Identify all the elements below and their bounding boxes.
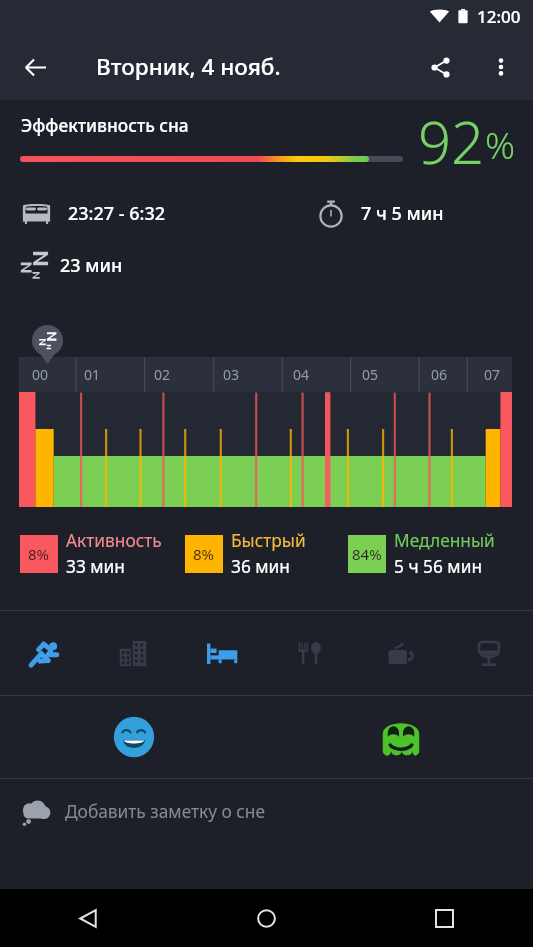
staticText: 7 ч 5 мин [361, 201, 444, 226]
button[interactable]: Mood: happy [110, 713, 158, 761]
staticText: 05 [362, 365, 379, 384]
staticText: 36 мин [231, 555, 290, 579]
button[interactable]: Mood: ghost [377, 713, 425, 761]
staticText: 92 [418, 102, 485, 172]
staticText: 02 [154, 365, 171, 384]
button[interactable]: 84% [348, 529, 495, 579]
staticText: 00 [32, 365, 49, 384]
button[interactable]: Back [11, 43, 59, 91]
button[interactable]: Back [0, 889, 177, 947]
button[interactable]: Recents [355, 889, 533, 947]
staticText: 04 [293, 365, 310, 384]
button[interactable]: 8% [20, 529, 162, 579]
staticText: Эффективность сна [21, 114, 189, 138]
staticText: 84% [352, 544, 382, 564]
staticText: 01 [84, 365, 101, 384]
button[interactable]: Alcohol [444, 611, 533, 695]
staticText: Активность [66, 529, 162, 553]
staticText: Быстрый [231, 529, 306, 553]
staticText: 33 мин [66, 555, 125, 579]
staticText: 23 мин [60, 253, 123, 278]
staticText: 23:27 - 6:32 [68, 201, 166, 226]
staticText: Медленный [394, 529, 495, 553]
button[interactable]: More options [477, 43, 525, 91]
button[interactable]: Bed [177, 611, 266, 695]
staticText: 5 ч 56 мин [394, 555, 483, 579]
button[interactable]: Sport [0, 611, 88, 695]
staticText: % [485, 119, 516, 169]
button[interactable]: Добавить заметку о сне [0, 779, 533, 845]
staticText: 03 [223, 365, 240, 384]
staticText: Добавить заметку о сне [65, 800, 265, 824]
staticText: 06 [431, 365, 448, 384]
staticText: 07 [484, 365, 501, 384]
staticText: 8% [193, 544, 215, 564]
button[interactable]: Food [266, 611, 355, 695]
button[interactable]: 8% [185, 529, 306, 579]
button[interactable]: Coffee [355, 611, 444, 695]
staticText: Вторник, 4 нояб. [96, 51, 281, 82]
staticText: 8% [28, 544, 50, 564]
button[interactable]: Home [177, 889, 355, 947]
button[interactable]: Share [416, 43, 464, 91]
button[interactable]: Work [88, 611, 177, 695]
staticText: 12:00 [477, 5, 521, 28]
